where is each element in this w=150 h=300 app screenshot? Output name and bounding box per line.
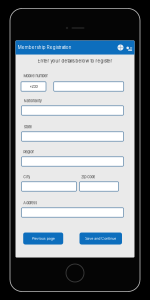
button[interactable] xyxy=(79,182,118,191)
staticText: Zip code xyxy=(81,175,95,179)
staticText: Address xyxy=(23,201,37,205)
staticText: Previous page xyxy=(32,236,55,241)
staticText: Region xyxy=(23,150,34,154)
button[interactable] xyxy=(21,182,76,191)
button[interactable]: Menu xyxy=(125,44,131,50)
staticText: Enter your details below to register xyxy=(37,58,112,64)
button[interactable] xyxy=(21,106,123,115)
staticText: Save and Continue xyxy=(85,236,116,241)
staticText: Nationality xyxy=(24,99,42,103)
button[interactable]: +233 xyxy=(21,82,46,91)
button[interactable]: Account xyxy=(117,44,123,50)
button[interactable]: Previous page xyxy=(23,232,63,244)
staticText: State xyxy=(24,125,32,129)
button[interactable] xyxy=(21,208,123,217)
staticText: +233 xyxy=(29,84,37,89)
staticText: Mobile number xyxy=(23,74,47,78)
button[interactable] xyxy=(21,157,123,166)
button[interactable]: Save and Continue xyxy=(79,232,122,244)
button[interactable] xyxy=(54,82,124,91)
button[interactable] xyxy=(21,132,123,141)
staticText: Membership Registration xyxy=(18,45,72,50)
staticText: City xyxy=(23,175,30,179)
